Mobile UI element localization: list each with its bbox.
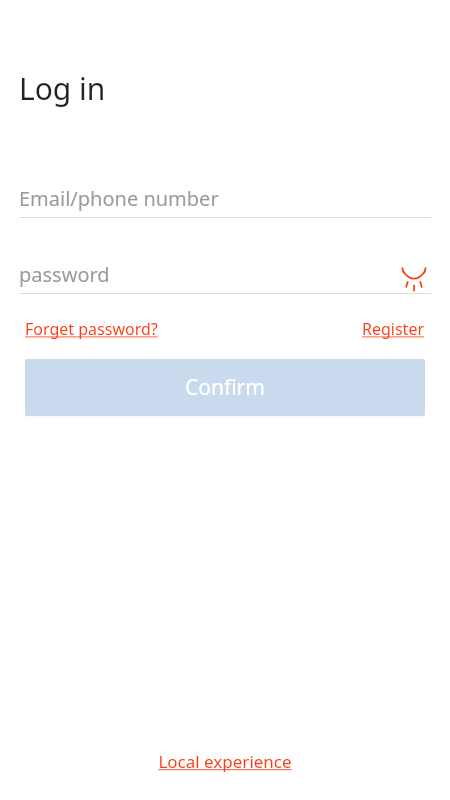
button[interactable]: password (19, 255, 397, 293)
button[interactable]: Forget password? (25, 318, 158, 340)
staticText: password (19, 261, 110, 288)
button[interactable]: Register (362, 318, 425, 340)
button[interactable]: Confirm (25, 359, 425, 416)
staticText: Local experience (158, 750, 292, 773)
button[interactable]: Email/phone number (19, 179, 431, 218)
button[interactable]: Local experience (158, 750, 292, 773)
button[interactable]: Show password (397, 257, 431, 291)
staticText: Forget password? (25, 318, 158, 340)
staticText: Confirm (185, 373, 265, 402)
staticText: Log in (19, 68, 106, 109)
staticText: Register (362, 318, 425, 340)
staticText: Email/phone number (19, 185, 219, 212)
